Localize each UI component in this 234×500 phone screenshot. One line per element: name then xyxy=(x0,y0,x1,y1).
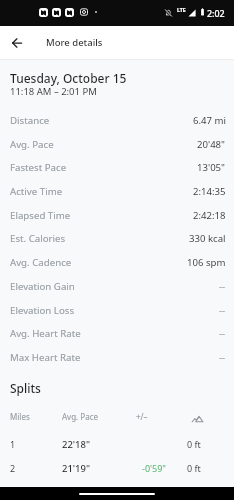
staticText: -- xyxy=(219,304,226,317)
staticText: -0'59" xyxy=(142,462,167,474)
staticText: Elevation Loss xyxy=(10,304,75,317)
button[interactable]: Avg. Pace xyxy=(0,132,234,156)
staticText: Splits xyxy=(10,380,41,396)
staticText: Active Time xyxy=(10,185,63,198)
staticText: 330 kcal xyxy=(189,232,226,245)
button[interactable]: Distance xyxy=(0,108,234,132)
staticText: Miles xyxy=(10,411,30,422)
staticText: -- xyxy=(219,280,226,293)
staticText: Avg. Pace xyxy=(10,138,54,151)
button[interactable]: Avg. Cadence xyxy=(0,250,234,274)
button[interactable]: Active Time xyxy=(0,179,234,203)
staticText: 106 spm xyxy=(187,256,226,269)
staticText: Fastest Pace xyxy=(10,161,67,174)
staticText: Max Heart Rate xyxy=(10,351,81,364)
staticText: 20'48" xyxy=(197,138,226,151)
staticText: Elapsed Time xyxy=(10,209,71,222)
staticText: 2:02 xyxy=(207,7,225,19)
button[interactable]: Est. Calories xyxy=(0,226,234,250)
staticText: 2 xyxy=(10,462,16,474)
button[interactable]: Elapsed Time xyxy=(0,203,234,227)
staticText: Elevation Gain xyxy=(10,280,75,293)
staticText: 21'19" xyxy=(62,462,91,475)
staticText: 2:14:35 xyxy=(193,185,226,198)
button[interactable]: Elevation Loss xyxy=(0,298,234,322)
button[interactable]: Navigate up xyxy=(5,31,29,55)
button[interactable]: Avg. Heart Rate xyxy=(0,321,234,345)
button[interactable]: Fastest Pace xyxy=(0,155,234,179)
staticText: LTE xyxy=(177,6,186,13)
staticText: 6.47 mi xyxy=(193,114,226,127)
staticText: 1 xyxy=(10,438,16,450)
button[interactable]: Max Heart Rate xyxy=(0,345,234,369)
staticText: 0 ft xyxy=(187,438,201,450)
staticText: 22'18" xyxy=(62,438,91,451)
button[interactable]: Elevation Gain xyxy=(0,274,234,298)
staticText: +/– xyxy=(136,411,148,422)
staticText: Est. Calories xyxy=(10,232,66,245)
staticText: 11:18 AM – 2:01 PM xyxy=(10,85,97,98)
staticText: Tuesday, October 15 xyxy=(10,70,127,86)
staticText: 0 ft xyxy=(187,462,201,474)
staticText: 2:42:18 xyxy=(193,209,226,222)
staticText: 13'05" xyxy=(197,161,226,174)
staticText: More details xyxy=(46,36,103,49)
staticText: -- xyxy=(219,351,226,364)
staticText: -- xyxy=(219,327,226,340)
staticText: Avg. Pace xyxy=(62,411,98,422)
button[interactable]: 1 xyxy=(0,432,234,456)
staticText: Avg. Heart Rate xyxy=(10,327,81,340)
staticText: Avg. Cadence xyxy=(10,256,72,269)
staticText: Distance xyxy=(10,114,50,127)
button[interactable]: 2 xyxy=(0,456,234,480)
